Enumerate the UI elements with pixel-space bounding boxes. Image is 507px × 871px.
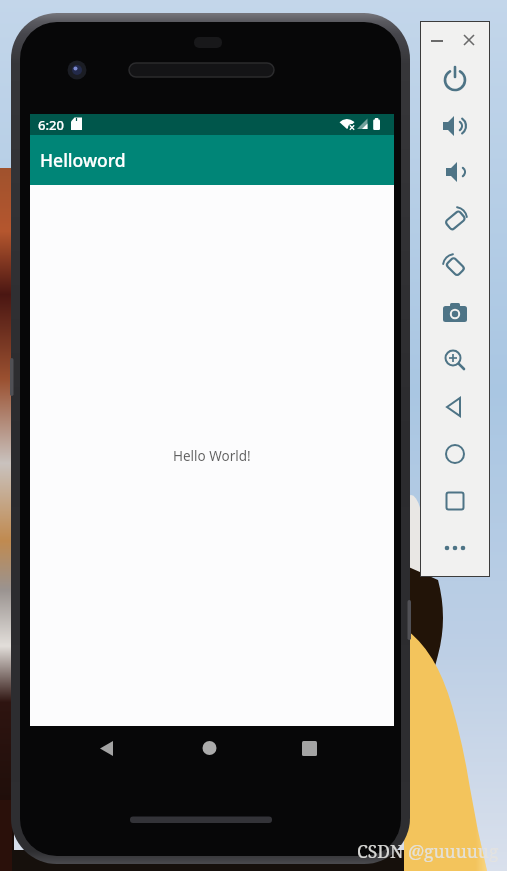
button[interactable] <box>458 29 480 51</box>
button[interactable] <box>426 29 448 51</box>
staticText: CSDN @guuuuug <box>357 839 499 863</box>
button[interactable] <box>435 59 475 99</box>
button[interactable] <box>435 387 475 427</box>
staticText: 6:20 <box>38 116 64 134</box>
button[interactable] <box>435 106 475 146</box>
button[interactable] <box>93 735 120 762</box>
button[interactable] <box>296 735 323 762</box>
button[interactable] <box>435 199 475 239</box>
button[interactable] <box>435 246 475 286</box>
button[interactable] <box>435 293 475 333</box>
button[interactable] <box>435 152 475 192</box>
button[interactable] <box>435 340 475 380</box>
staticText: Hello World! <box>173 447 251 465</box>
button[interactable] <box>435 481 475 521</box>
button[interactable] <box>435 434 475 474</box>
button[interactable] <box>435 528 475 568</box>
staticText: Helloword <box>40 148 126 172</box>
button[interactable] <box>196 735 223 762</box>
